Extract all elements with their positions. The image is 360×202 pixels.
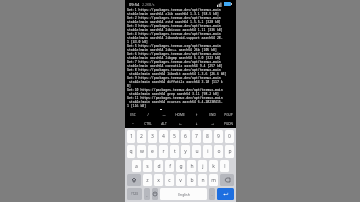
staticText: Get:9 https://packages.termux.dev/apt/te… <box>127 76 221 80</box>
button[interactable]: h <box>187 160 196 172</box>
button[interactable]: Shift <box>127 174 141 186</box>
button[interactable]: ALT <box>156 119 172 128</box>
button[interactable]: Backspace <box>220 174 234 186</box>
staticText: stable/main aarch64 zlib aarch64 1.3.1 [… <box>127 12 219 16</box>
staticText: 6 <box>184 133 187 140</box>
staticText: , <box>146 192 148 197</box>
staticText: Get:2 https://packages.termux.dev/apt/te… <box>127 16 221 20</box>
staticText: d <box>157 163 161 170</box>
staticText: Get:4 https://packages.termux.dev/apt/te… <box>127 32 221 36</box>
button[interactable]: b <box>187 174 196 186</box>
button[interactable]: f <box>165 160 174 172</box>
button[interactable]: 3 <box>148 130 157 143</box>
staticText: . <box>211 192 213 197</box>
staticText: CTRL <box>144 122 152 126</box>
button[interactable]: Enter <box>217 188 234 200</box>
staticText: w <box>140 148 144 155</box>
button[interactable]: ← <box>172 119 188 128</box>
button[interactable]: w <box>137 145 146 158</box>
staticText: ↑ <box>195 113 198 117</box>
staticText: → <box>211 122 214 126</box>
button[interactable]: l <box>220 160 229 172</box>
button[interactable]: m <box>209 174 218 186</box>
button[interactable]: 5 <box>170 130 179 143</box>
button[interactable]: g <box>176 160 185 172</box>
staticText: 1 [43.0 kB] <box>127 40 149 44</box>
button[interactable]: → <box>204 119 220 128</box>
staticText: / <box>147 113 149 117</box>
button[interactable]: j <box>198 160 207 172</box>
button[interactable]: ?123 <box>127 188 142 200</box>
button[interactable]: u <box>192 145 201 158</box>
button[interactable]: . <box>209 188 215 200</box>
button[interactable]: p <box>225 145 234 158</box>
staticText: ↓ <box>195 122 198 126</box>
staticText: Get:8 https://packages.termux.dev/apt/te… <box>127 68 221 72</box>
button[interactable]: 9 <box>214 130 223 143</box>
button[interactable]: , <box>144 188 150 200</box>
staticText: 5 <box>173 133 176 140</box>
button[interactable]: 8 <box>203 130 212 143</box>
button[interactable]: 6 <box>181 130 190 143</box>
button[interactable]: Emoji <box>152 188 158 200</box>
staticText: stable/main aarch64 grep aarch64 3.11 [9… <box>127 92 219 96</box>
button[interactable]: k <box>209 160 218 172</box>
staticText: u <box>195 148 199 155</box>
staticText: stable/main aarch64 libicuuc aarch64 1.1… <box>127 28 223 32</box>
staticText: Get:10 https://packages.termux.dev/apt/t… <box>127 88 223 92</box>
staticText: k <box>212 163 215 170</box>
staticText: j <box>202 163 204 170</box>
button[interactable]: t <box>170 145 179 158</box>
staticText: ← <box>179 122 182 126</box>
button[interactable]: c <box>165 174 174 186</box>
staticText: English <box>178 192 190 197</box>
button[interactable]: z <box>143 174 152 186</box>
button[interactable]: 2 <box>137 130 146 143</box>
button[interactable]: CTRL <box>140 119 156 128</box>
staticText: r <box>162 148 165 155</box>
staticText: 1 [116 kB] <box>127 104 147 108</box>
button[interactable]: o <box>214 145 223 158</box>
staticText: p <box>228 148 232 155</box>
button[interactable]: d <box>154 160 163 172</box>
button[interactable]: END <box>204 110 220 119</box>
staticText: Get:5 https://packages.termux.org/apt/te… <box>127 44 221 48</box>
button[interactable]: x <box>154 174 163 186</box>
button[interactable]: y <box>181 145 190 158</box>
button[interactable]: ESC <box>125 110 140 119</box>
button[interactable]: — <box>156 110 172 119</box>
button[interactable]: / <box>140 110 156 119</box>
button[interactable]: ~ <box>125 119 140 128</box>
staticText: e <box>151 148 154 155</box>
button[interactable]: ↓ <box>188 119 204 128</box>
button[interactable]: a <box>132 160 141 172</box>
button[interactable]: 1 <box>127 130 135 143</box>
button[interactable]: 7 <box>192 130 201 143</box>
button[interactable]: n <box>198 174 207 186</box>
button[interactable]: 0 <box>225 130 234 143</box>
staticText: i <box>207 148 209 155</box>
button[interactable]: 4 <box>159 130 168 143</box>
staticText: f <box>169 163 171 170</box>
button[interactable]: PGUP <box>220 110 236 119</box>
staticText: Get:1 https://packages.termux.dev/apt/te… <box>127 8 221 12</box>
staticText: z <box>146 177 149 184</box>
staticText: c <box>168 177 171 184</box>
staticText: stable/main aarch64 ncurses aarch64 6.4-… <box>127 100 223 104</box>
staticText: ESC <box>130 113 136 117</box>
button[interactable]: i <box>203 145 212 158</box>
button[interactable]: r <box>159 145 168 158</box>
staticText: stable/main aarch64 libc++ aarch64 26b [… <box>127 48 217 52</box>
button[interactable]: English <box>160 188 207 200</box>
button[interactable]: HOME <box>172 110 188 119</box>
staticText: stable/main aarch64 diffutils aarch64 3.… <box>127 80 223 84</box>
staticText: 1 <box>130 133 133 140</box>
button[interactable]: ↑ <box>188 110 204 119</box>
button[interactable]: e <box>148 145 157 158</box>
button[interactable]: PGDN <box>220 119 236 128</box>
button[interactable]: q <box>127 145 135 158</box>
staticText: x <box>157 177 160 184</box>
button[interactable]: s <box>143 160 152 172</box>
button[interactable]: v <box>176 174 185 186</box>
